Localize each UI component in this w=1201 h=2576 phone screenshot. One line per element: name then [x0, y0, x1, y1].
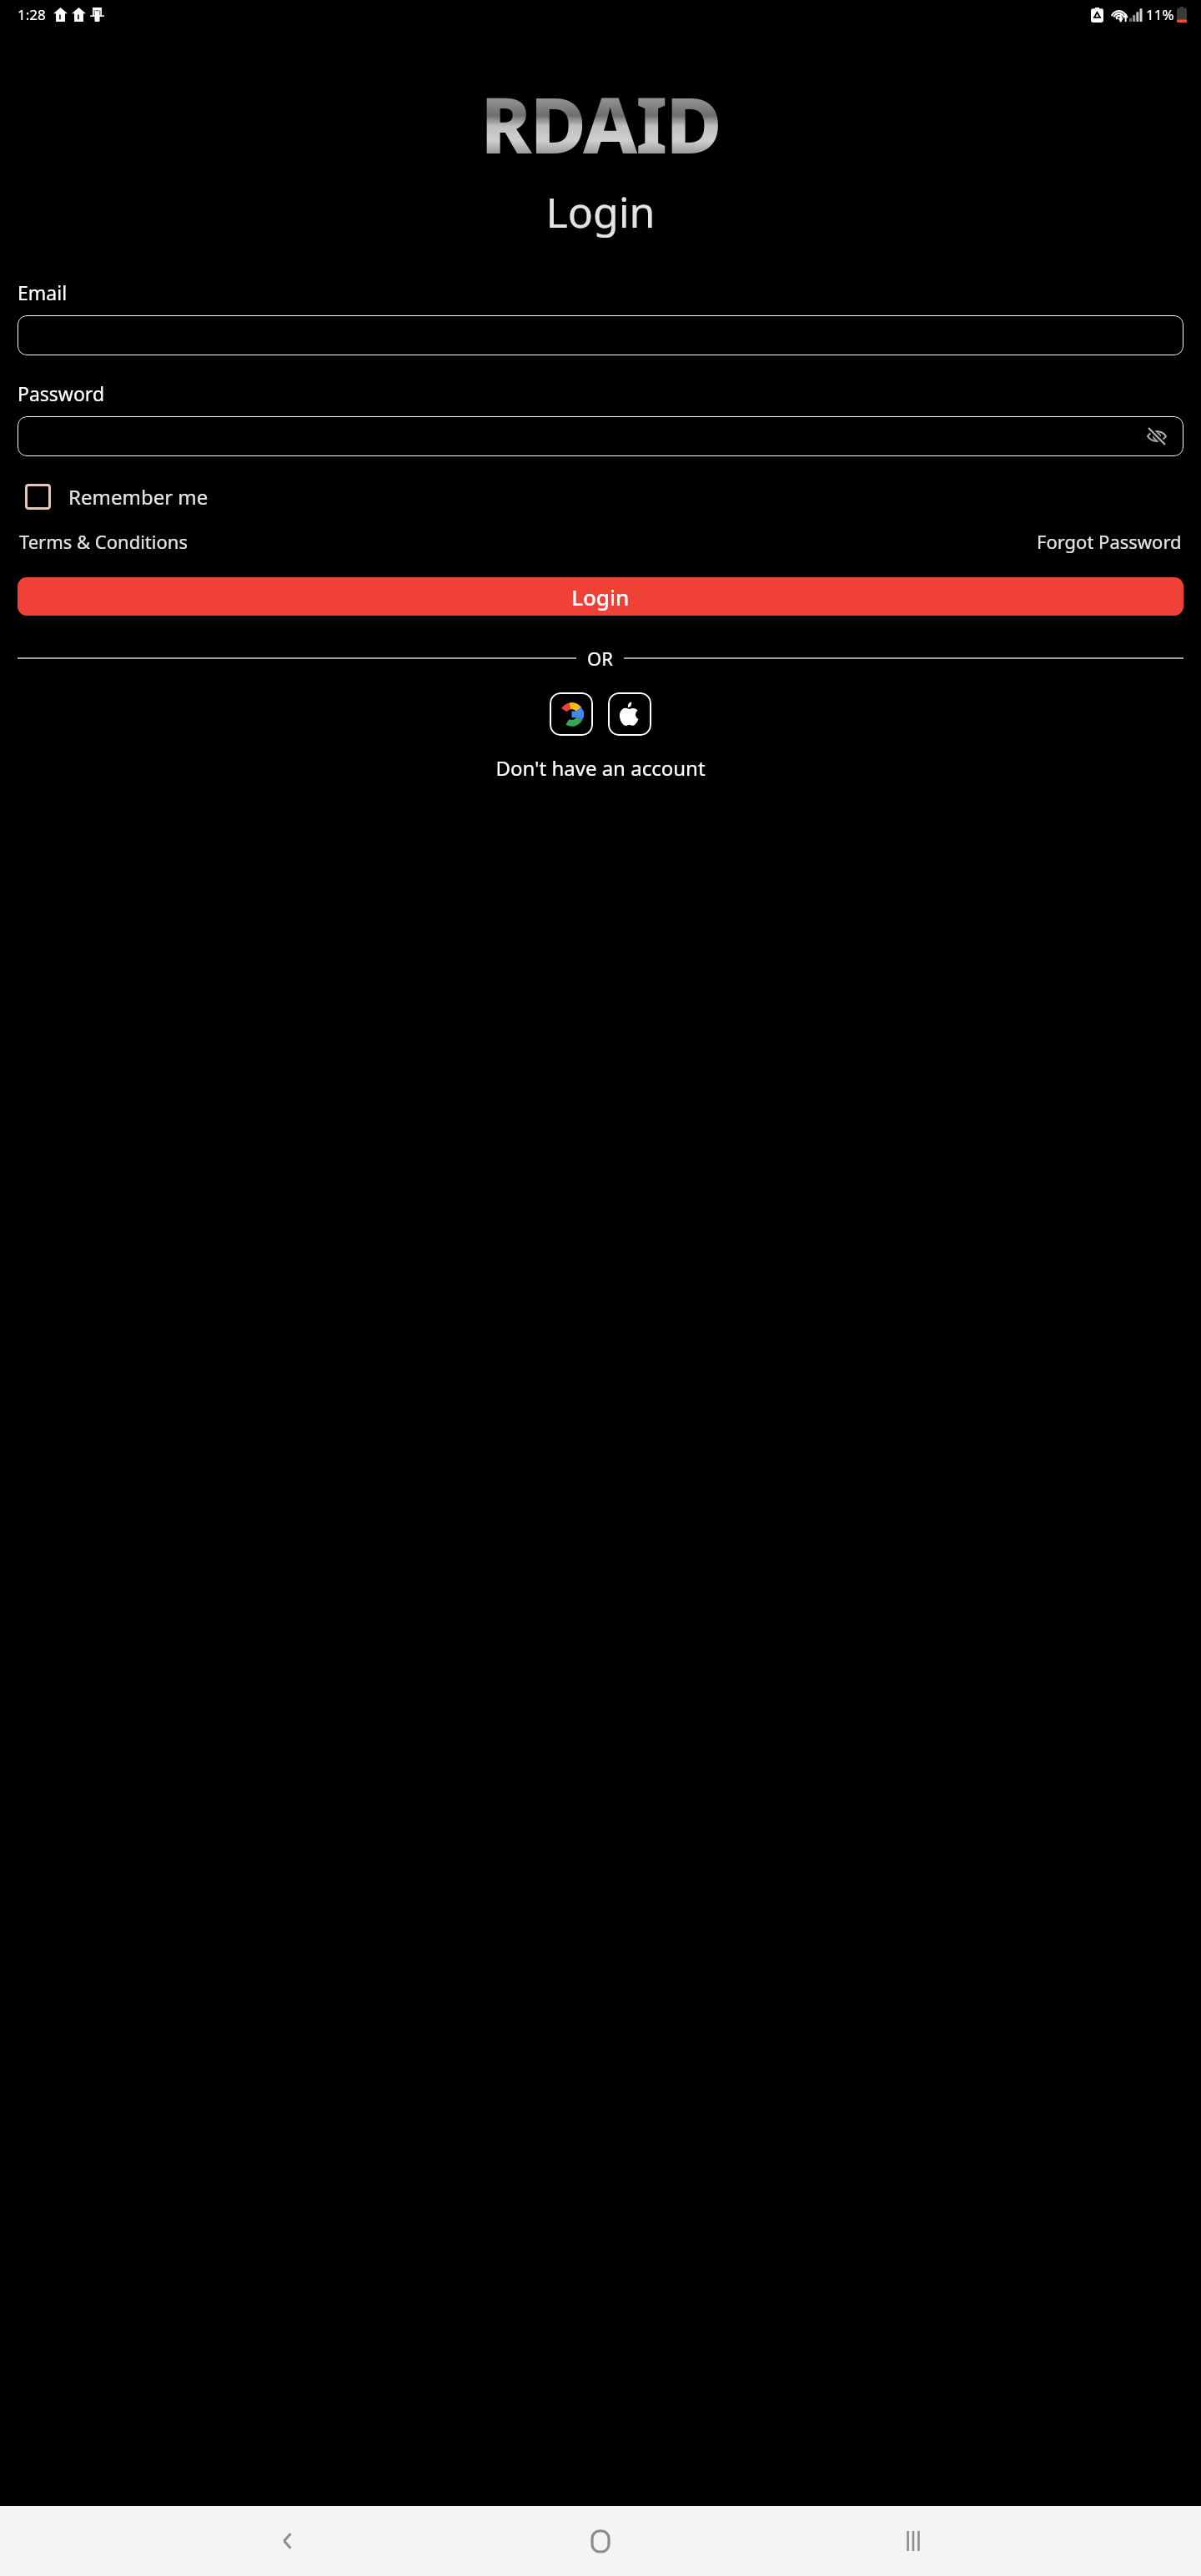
button[interactable]: Sign in with Apple	[608, 692, 651, 736]
staticText: Password	[18, 380, 105, 406]
button[interactable]: Terms & Conditions	[19, 529, 188, 554]
button[interactable]: Home	[575, 2516, 626, 2566]
staticText: OR	[587, 646, 613, 671]
button[interactable]: Forgot Password	[1037, 529, 1182, 554]
button[interactable]: Login	[18, 577, 1183, 616]
staticText: Login	[0, 184, 1201, 240]
button[interactable]: Recent apps	[888, 2516, 938, 2566]
staticText: Email	[18, 279, 68, 305]
button[interactable]	[18, 315, 1183, 355]
staticText: Remember me	[68, 483, 209, 511]
button[interactable]: Back	[263, 2516, 313, 2566]
button[interactable]: Show password	[1145, 425, 1168, 448]
staticText: RDAID	[480, 72, 721, 158]
button[interactable]: Don't have an account	[0, 754, 1201, 782]
button[interactable]: Remember me	[25, 483, 209, 511]
staticText: Login	[571, 582, 630, 611]
button[interactable]: Show password	[18, 416, 1183, 456]
staticText: 1:28	[18, 5, 46, 24]
staticText: 11%	[1146, 5, 1174, 24]
button[interactable]: Sign in with Google	[550, 692, 593, 736]
